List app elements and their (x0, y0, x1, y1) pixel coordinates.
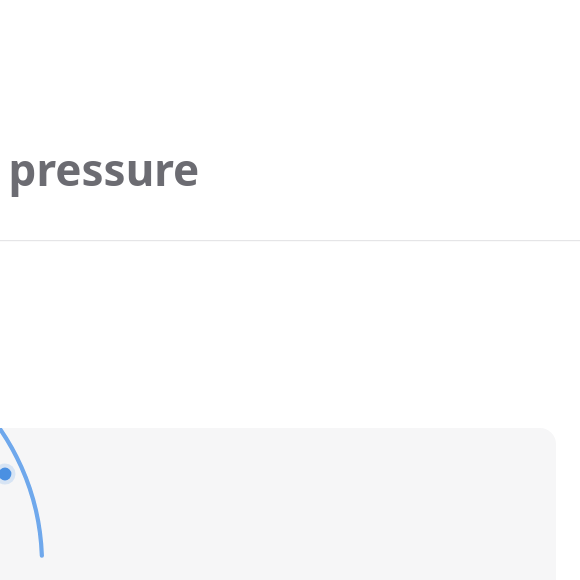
staticText: Blood pressure (0, 139, 200, 199)
button[interactable]: Blood pressure chart (0, 428, 556, 580)
button[interactable]: Blood pressure (0, 139, 200, 199)
